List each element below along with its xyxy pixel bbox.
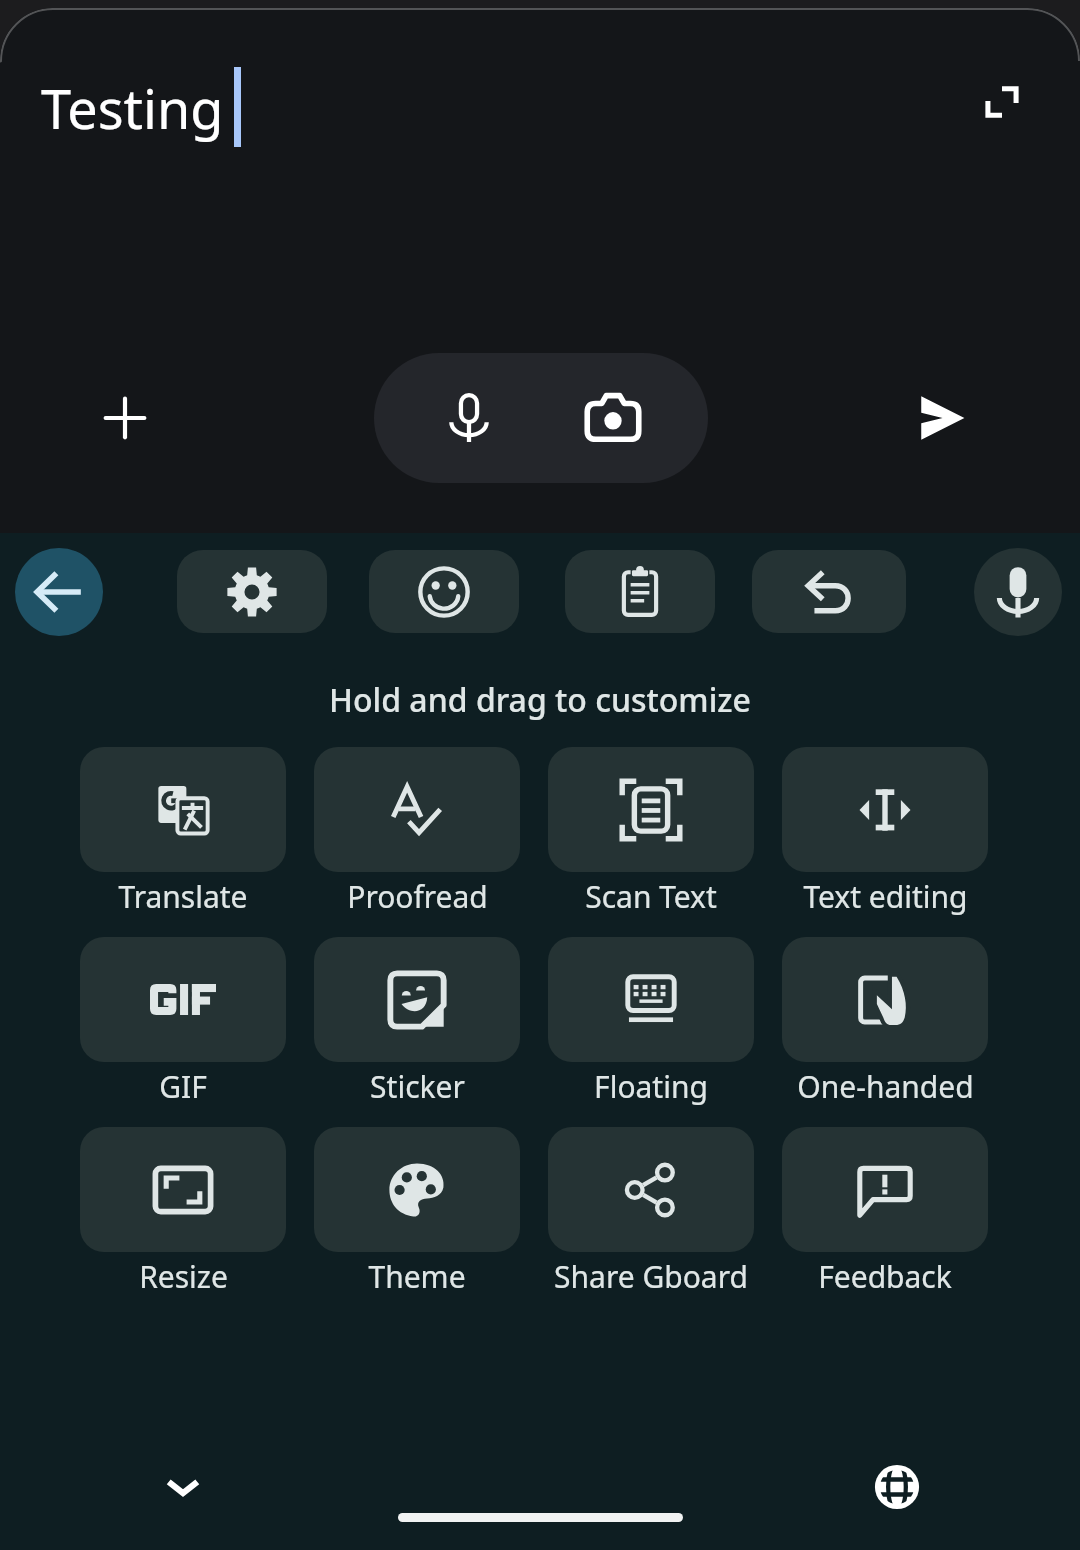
staticText: Theme bbox=[368, 1256, 466, 1297]
button[interactable]: Text editing bbox=[782, 747, 988, 917]
staticText: Scan Text bbox=[585, 876, 717, 917]
staticText: Share Gboard bbox=[554, 1256, 748, 1297]
staticText: Resize bbox=[139, 1256, 228, 1297]
button[interactable]: Feedback bbox=[782, 1127, 988, 1297]
button[interactable]: Voice input bbox=[410, 359, 528, 477]
button[interactable]: Sticker bbox=[314, 937, 520, 1107]
staticText: Sticker bbox=[370, 1066, 465, 1107]
staticText: Text editing bbox=[803, 876, 968, 917]
button[interactable]: Translate bbox=[80, 747, 286, 917]
staticText: Feedback bbox=[818, 1256, 952, 1297]
button[interactable]: Proofread bbox=[314, 747, 520, 917]
staticText: One-handed bbox=[797, 1066, 974, 1107]
button[interactable]: GIF bbox=[80, 937, 286, 1107]
staticText: Translate bbox=[118, 876, 248, 917]
button[interactable]: Scan Text bbox=[548, 747, 754, 917]
button[interactable]: Emoji bbox=[369, 550, 519, 633]
button[interactable]: Share Gboard bbox=[548, 1127, 754, 1297]
button[interactable]: Send bbox=[882, 359, 1000, 477]
button[interactable]: Undo bbox=[752, 550, 906, 633]
button[interactable]: Clipboard bbox=[565, 550, 715, 633]
button[interactable]: Add bbox=[66, 359, 184, 477]
button[interactable]: Resize bbox=[80, 1127, 286, 1297]
staticText: Hold and drag to customize bbox=[329, 678, 751, 722]
button[interactable]: Testing bbox=[0, 38, 1080, 338]
staticText: Floating bbox=[594, 1066, 708, 1107]
button[interactable]: Expand bbox=[958, 58, 1046, 146]
button[interactable]: One-handed bbox=[782, 937, 988, 1107]
button[interactable]: Voice typing bbox=[974, 548, 1062, 636]
button[interactable]: Camera bbox=[554, 359, 672, 477]
button[interactable]: Change language bbox=[847, 1437, 947, 1537]
staticText: GIF bbox=[159, 1066, 207, 1107]
button[interactable]: Back bbox=[15, 548, 103, 636]
button[interactable]: Floating bbox=[548, 937, 754, 1107]
button[interactable]: Theme bbox=[314, 1127, 520, 1297]
staticText: Proofread bbox=[347, 876, 488, 917]
staticText: Testing bbox=[41, 71, 224, 145]
button[interactable]: Hide keyboard bbox=[133, 1437, 233, 1537]
button[interactable]: Settings bbox=[177, 550, 327, 633]
